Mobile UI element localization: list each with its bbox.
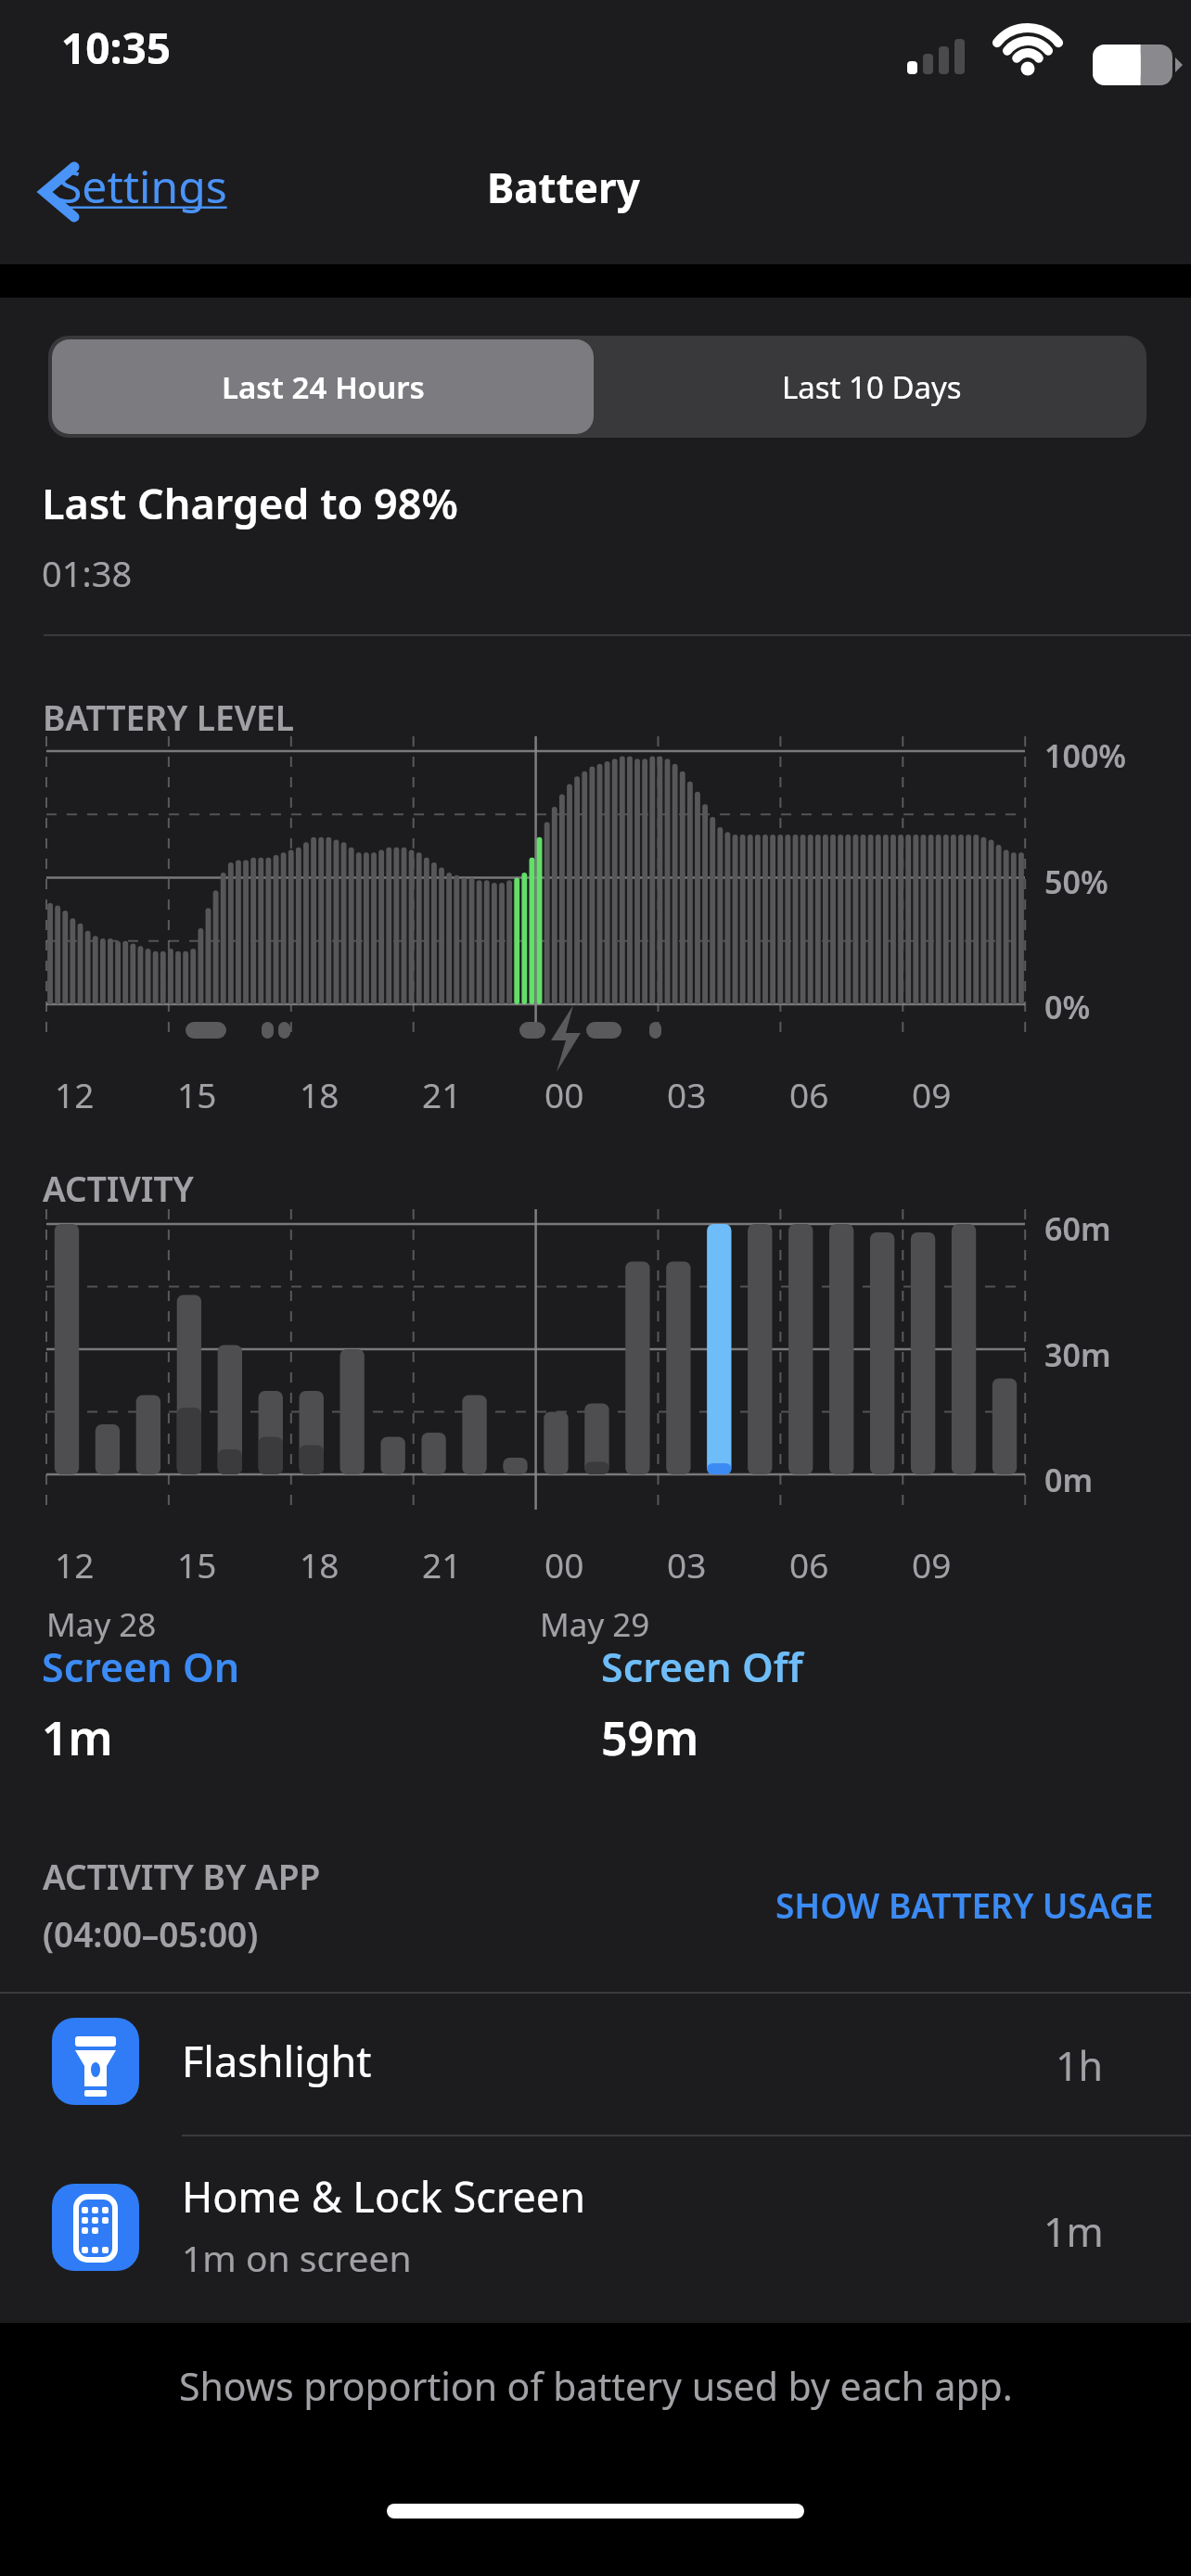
- staticText: 10:35: [61, 19, 172, 77]
- staticText: 09: [912, 1071, 952, 1117]
- staticText: 100%: [1044, 734, 1127, 777]
- staticText: May 28: [46, 1602, 157, 1647]
- staticText: Settings: [58, 156, 227, 216]
- staticText: ACTIVITY: [43, 1165, 194, 1211]
- button[interactable]: Back to Settings: [17, 148, 221, 226]
- staticText: 18: [300, 1541, 339, 1588]
- staticText: Screen Off: [601, 1639, 803, 1694]
- staticText: 01:38: [42, 549, 133, 597]
- staticText: 59m: [601, 1706, 699, 1769]
- staticText: 06: [789, 1541, 829, 1588]
- staticText: 18: [300, 1071, 339, 1117]
- staticText: 0%: [1044, 986, 1091, 1028]
- staticText: 50%: [1044, 861, 1108, 903]
- button[interactable]: [0, 2136, 1191, 2318]
- staticText: Shows proportion of battery used by each…: [179, 2360, 1013, 2412]
- staticText: 15: [177, 1071, 217, 1117]
- button[interactable]: SHOW BATTERY USAGE: [603, 1871, 1154, 1938]
- staticText: SHOW BATTERY USAGE: [775, 1881, 1154, 1928]
- staticText: May 29: [540, 1602, 650, 1647]
- staticText: 60m: [1044, 1207, 1111, 1250]
- staticText: 03: [667, 1071, 707, 1117]
- button[interactable]: [0, 1994, 1191, 2135]
- staticText: 00: [544, 1541, 584, 1588]
- staticText: 00: [544, 1071, 584, 1117]
- staticText: 03: [667, 1541, 707, 1588]
- staticText: 21: [422, 1071, 462, 1117]
- button[interactable]: Last 10 Days: [597, 336, 1146, 438]
- staticText: BATTERY LEVEL: [43, 694, 294, 740]
- staticText: Flashlight: [182, 2033, 372, 2089]
- staticText: 09: [912, 1541, 952, 1588]
- staticText: 06: [789, 1071, 829, 1117]
- button[interactable]: [594, 1630, 890, 1788]
- staticText: Home & Lock Screen: [182, 2168, 586, 2225]
- staticText: 15: [177, 1541, 217, 1588]
- staticText: 30m: [1044, 1333, 1111, 1376]
- staticText: 1h: [1056, 2038, 1104, 2093]
- staticText: 1m: [1044, 2204, 1104, 2259]
- staticText: Battery: [487, 159, 640, 215]
- staticText: ACTIVITY BY APP: [43, 1853, 321, 1899]
- staticText: 1m on screen: [182, 2233, 412, 2282]
- staticText: (04:00–05:00): [43, 1910, 259, 1957]
- staticText: Last Charged to 98%: [42, 475, 458, 531]
- staticText: Screen On: [42, 1639, 240, 1694]
- button[interactable]: Last 24 Hours: [48, 336, 597, 438]
- staticText: 0m: [1044, 1459, 1094, 1501]
- staticText: 21: [422, 1541, 462, 1588]
- staticText: 1m: [42, 1706, 113, 1769]
- button[interactable]: [33, 1630, 312, 1788]
- staticText: 12: [55, 1071, 95, 1117]
- staticText: Last 10 Days: [782, 366, 962, 408]
- staticText: Last 24 Hours: [222, 366, 425, 408]
- staticText: 12: [55, 1541, 95, 1588]
